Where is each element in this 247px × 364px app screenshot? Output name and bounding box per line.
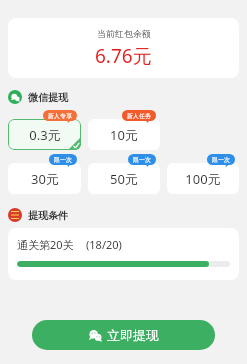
staticText: 限一次 (212, 156, 230, 164)
other: Conditions (8, 208, 22, 222)
button[interactable]: WeChat (8, 90, 68, 104)
staticText: 新人专享 (48, 112, 72, 120)
button[interactable]: 通关第20关 (8, 228, 239, 280)
staticText: 限一次 (133, 156, 151, 164)
button[interactable]: Conditions (8, 208, 68, 222)
staticText: 10元 (110, 126, 138, 144)
staticText: 30元 (31, 170, 59, 188)
staticText: 限一次 (54, 156, 72, 164)
staticText: (18/20) (86, 237, 122, 252)
button[interactable]: 100元 (167, 154, 239, 194)
button[interactable]: 当前红包余额 (8, 18, 239, 78)
staticText: 0.3元 (29, 126, 61, 144)
button[interactable]: 立即提现 (32, 320, 215, 350)
staticText: 微信提现 (28, 91, 68, 104)
button[interactable]: 30元 (8, 154, 81, 194)
staticText: 通关第20关 (17, 237, 74, 252)
staticText: 新人任务 (127, 112, 151, 120)
staticText: 当前红包余额 (97, 28, 151, 39)
other: WeChat (8, 90, 22, 104)
staticText: 50元 (110, 170, 138, 188)
staticText: 100元 (185, 170, 221, 188)
staticText: 6.76元 (95, 43, 152, 69)
button[interactable]: 10元 (88, 110, 160, 150)
button[interactable]: 50元 (88, 154, 160, 194)
staticText: 立即提现 (107, 327, 159, 343)
button[interactable]: 0.3元 (8, 110, 81, 150)
staticText: 提现条件 (28, 209, 68, 222)
